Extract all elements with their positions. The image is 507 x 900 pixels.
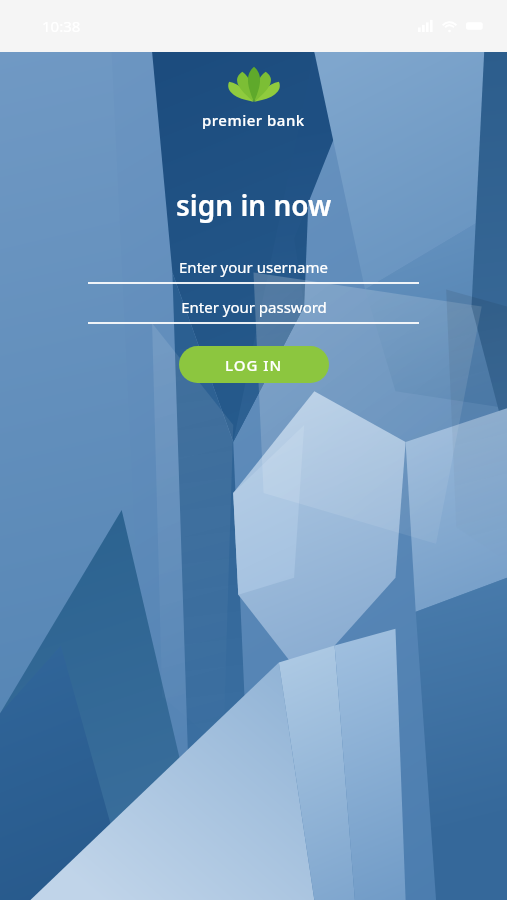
staticText: Enter your password: [181, 297, 327, 317]
button[interactable]: LOG IN: [179, 346, 329, 383]
other: Premier Bank logo: [225, 66, 283, 102]
staticText: Enter your username: [179, 257, 328, 277]
button[interactable]: Enter your password: [88, 294, 419, 324]
staticText: sign in now: [176, 186, 332, 224]
staticText: 10:38: [42, 16, 81, 36]
staticText: LOG IN: [225, 355, 283, 375]
staticText: premier bank: [202, 110, 305, 130]
button[interactable]: Enter your username: [88, 254, 419, 284]
